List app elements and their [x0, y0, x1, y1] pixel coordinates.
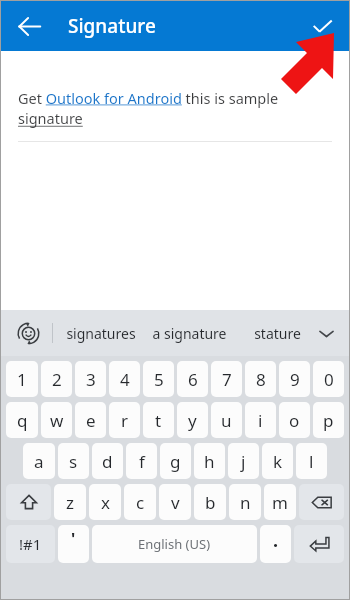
staticText: 2 [52, 368, 62, 391]
staticText: !#1 [19, 534, 42, 554]
staticText: c [136, 491, 145, 514]
button[interactable]: !#1 [6, 525, 55, 563]
button[interactable]: 9 [279, 361, 310, 397]
staticText: h [204, 450, 215, 473]
button[interactable]: h [194, 443, 225, 479]
staticText: . [273, 528, 279, 553]
button[interactable]: k [262, 443, 293, 479]
staticText: y [188, 409, 197, 432]
staticText: 8 [256, 368, 266, 391]
staticText: 9 [290, 368, 300, 391]
staticText: p [323, 409, 334, 432]
button[interactable]: Shift [6, 484, 51, 520]
button[interactable]: s [58, 443, 89, 479]
staticText: 0 [324, 368, 334, 391]
button[interactable]: n [229, 484, 261, 520]
button[interactable]: t [143, 402, 174, 438]
button[interactable]: More suggestions [311, 318, 341, 348]
button[interactable]: a [23, 443, 55, 479]
button[interactable]: 2 [41, 361, 72, 397]
staticText: l [309, 450, 314, 473]
button[interactable]: g [160, 443, 191, 479]
button[interactable]: c [124, 484, 156, 520]
staticText: 4 [120, 368, 130, 391]
button[interactable]: p [313, 402, 344, 438]
staticText: 1 [17, 368, 27, 391]
button[interactable]: 5 [143, 361, 174, 397]
staticText: 5 [154, 368, 164, 391]
button[interactable]: 7 [211, 361, 242, 397]
button[interactable]: 1 [6, 361, 38, 397]
staticText: 7 [222, 368, 232, 391]
button[interactable]: Save [302, 6, 342, 46]
staticText: g [170, 450, 181, 473]
button[interactable]: Get Outlook for Android this is sample s… [18, 88, 332, 129]
button[interactable]: ' [58, 525, 89, 563]
staticText: ' [71, 528, 76, 550]
button[interactable]: x [89, 484, 121, 520]
staticText: 6 [188, 368, 198, 391]
staticText: z [66, 491, 74, 514]
staticText: a signature [152, 324, 227, 343]
staticText: o [289, 409, 300, 432]
staticText: r [121, 409, 129, 432]
button[interactable]: y [177, 402, 208, 438]
button[interactable]: a signature [145, 312, 233, 354]
staticText: n [240, 491, 251, 514]
staticText: i [258, 409, 263, 432]
button[interactable]: . [260, 525, 291, 563]
button[interactable]: z [54, 484, 86, 520]
staticText: k [273, 450, 283, 473]
button[interactable]: 3 [75, 361, 106, 397]
button[interactable]: i [245, 402, 276, 438]
staticText: w [50, 409, 64, 432]
button[interactable]: d [92, 443, 123, 479]
button[interactable]: u [211, 402, 242, 438]
button[interactable]: Enter [294, 525, 344, 563]
staticText: stature [254, 324, 301, 343]
button[interactable]: 4 [109, 361, 140, 397]
staticText: Signature [68, 13, 156, 39]
button[interactable]: j [228, 443, 259, 479]
staticText: b [205, 491, 216, 514]
button[interactable]: Emoji keyboard [9, 314, 47, 352]
button[interactable]: w [41, 402, 72, 438]
staticText: s [69, 450, 78, 473]
staticText: f [139, 450, 145, 473]
button[interactable]: stature [233, 312, 321, 354]
staticText: q [17, 409, 28, 432]
staticText: signatures [66, 324, 136, 343]
staticText: v [171, 491, 180, 514]
button[interactable]: 6 [177, 361, 208, 397]
button[interactable]: l [296, 443, 327, 479]
button[interactable]: r [109, 402, 140, 438]
button[interactable]: e [75, 402, 106, 438]
staticText: u [221, 409, 232, 432]
button[interactable]: signatures [57, 312, 145, 354]
staticText: x [101, 491, 110, 514]
button[interactable]: o [279, 402, 310, 438]
staticText: d [102, 450, 113, 473]
button[interactable]: 0 [313, 361, 344, 397]
button[interactable]: q [6, 402, 38, 438]
staticText: English (US) [138, 535, 211, 553]
staticText: 3 [86, 368, 96, 391]
button[interactable]: Navigate up [10, 7, 48, 45]
staticText: j [241, 450, 246, 473]
button[interactable]: v [159, 484, 191, 520]
staticText: m [272, 491, 288, 514]
button[interactable]: m [264, 484, 296, 520]
button[interactable]: f [126, 443, 157, 479]
staticText: a [34, 450, 44, 473]
staticText: t [155, 409, 162, 432]
button[interactable]: English (US) [92, 525, 257, 563]
button[interactable]: Backspace [299, 484, 344, 520]
staticText: e [86, 409, 96, 432]
button[interactable]: 8 [245, 361, 276, 397]
button[interactable]: b [194, 484, 226, 520]
